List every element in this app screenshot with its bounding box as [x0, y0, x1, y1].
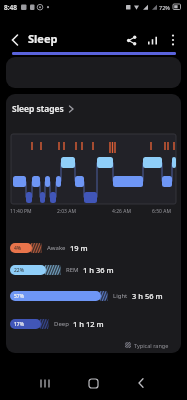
staticText: 3 h 56 m: [132, 291, 163, 301]
staticText: REM: [66, 266, 79, 274]
button[interactable]: Sleep stages: [12, 100, 74, 118]
staticText: 11:40 PM: [10, 208, 32, 215]
staticText: 1 h 36 m: [83, 265, 114, 275]
button[interactable]: [129, 372, 153, 394]
staticText: 1 h 12 m: [73, 319, 104, 329]
staticText: 4%: [14, 245, 22, 252]
button[interactable]: [141, 29, 163, 51]
staticText: Typical range: [134, 342, 169, 349]
button[interactable]: [33, 372, 57, 394]
staticText: 57%: [14, 293, 24, 300]
button[interactable]: [6, 57, 181, 88]
staticText: Deep: [54, 320, 69, 328]
staticText: Awake: [47, 244, 66, 252]
staticText: Sleep: [28, 31, 58, 46]
staticText: Sleep stages: [12, 103, 64, 115]
staticText: 17%: [14, 321, 24, 328]
staticText: 8:48: [4, 3, 17, 12]
staticText: 72%: [159, 4, 170, 11]
staticText: 2:03 AM: [57, 208, 76, 215]
button[interactable]: [4, 29, 26, 51]
staticText: Light: [113, 292, 128, 300]
staticText: 22%: [14, 267, 24, 274]
button[interactable]: [81, 372, 105, 394]
staticText: 6:50 AM: [152, 208, 171, 215]
button[interactable]: [120, 29, 142, 51]
staticText: 4:26 AM: [112, 208, 131, 215]
staticText: 19 m: [70, 243, 88, 253]
button[interactable]: [162, 29, 184, 51]
